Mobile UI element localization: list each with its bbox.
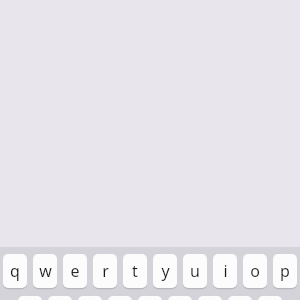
button[interactable]: k [228,296,252,300]
button[interactable]: u [183,254,207,288]
staticText: r [102,260,109,282]
staticText: y [161,260,170,282]
button[interactable]: j [198,296,222,300]
staticText: e [70,260,80,282]
staticText: q [10,260,20,282]
staticText: t [132,260,138,282]
staticText: i [223,260,228,282]
button[interactable]: p [273,254,297,288]
staticText: u [190,260,200,282]
button[interactable]: w [33,254,57,288]
button[interactable]: q [3,254,27,288]
staticText: p [280,260,290,282]
button[interactable]: o [243,254,267,288]
button[interactable]: l [258,296,282,300]
staticText: o [250,260,260,282]
button[interactable]: g [138,296,162,300]
button[interactable]: s [48,296,72,300]
button[interactable]: y [153,254,177,288]
button[interactable]: d [78,296,102,300]
button[interactable]: f [108,296,132,300]
button[interactable]: h [168,296,192,300]
button[interactable]: i [213,254,237,288]
button[interactable]: a [18,296,42,300]
button[interactable]: r [93,254,117,288]
button[interactable]: t [123,254,147,288]
button[interactable]: e [63,254,87,288]
staticText: w [39,260,52,282]
